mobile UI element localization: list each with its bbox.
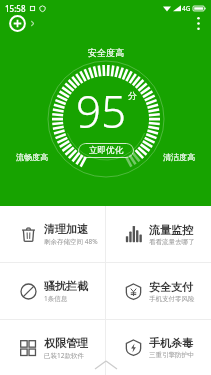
staticText: 看看流量去哪了: [149, 238, 195, 246]
staticText: 流量监控: [149, 223, 193, 237]
staticText: 立即优化: [89, 145, 123, 156]
button[interactable]: More options: [191, 11, 206, 36]
staticText: 95: [76, 81, 127, 141]
button[interactable]: 清理加速: [0, 206, 105, 262]
staticText: 三重引擎防护中: [149, 351, 195, 359]
staticText: 手机杀毒: [149, 336, 193, 350]
button[interactable]: Account: [6, 12, 38, 35]
staticText: 清洁度高: [163, 152, 195, 162]
other: Expand: [95, 361, 117, 369]
button[interactable]: 手机杀毒: [105, 320, 211, 375]
staticText: 1条信息: [44, 294, 68, 303]
button[interactable]: 流量监控: [105, 206, 211, 262]
staticText: 骚扰拦截: [44, 279, 88, 293]
staticText: 4G: [182, 4, 191, 13]
button[interactable]: 权限管理: [0, 320, 105, 375]
staticText: 流畅度高: [16, 152, 48, 162]
staticText: 剩余存储空间 48%: [44, 237, 98, 246]
staticText: 分: [128, 90, 137, 101]
staticText: 安全度高: [88, 47, 124, 58]
staticText: 权限管理: [44, 336, 88, 350]
staticText: 15:58: [5, 3, 26, 14]
staticText: 清理加速: [44, 222, 88, 236]
staticText: 安全支付: [149, 280, 193, 294]
staticText: 手机支付零风险: [149, 295, 195, 303]
button[interactable]: 骚扰拦截: [0, 263, 105, 319]
button[interactable]: 立即优化: [78, 143, 134, 158]
button[interactable]: 安全支付: [105, 263, 211, 319]
staticText: 已装12款软件: [44, 351, 84, 360]
